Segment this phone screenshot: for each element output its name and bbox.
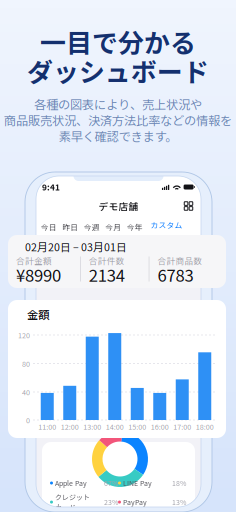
staticText: Apple Pay (55, 478, 87, 488)
button[interactable]: 今月 (102, 217, 124, 237)
staticText: 商品販売状況、決済方法比率などの情報を (4, 111, 232, 129)
staticText: 120 (18, 330, 30, 340)
staticText: 18% (172, 478, 186, 488)
button[interactable]: 昨日 (59, 217, 81, 237)
button[interactable]: 今日 (38, 217, 59, 237)
staticText: デモ店舗 (98, 199, 138, 213)
staticText: 23% (104, 497, 118, 507)
staticText: 67% (104, 478, 118, 488)
staticText: 13:00 (83, 421, 101, 432)
staticText: 9:41 (42, 181, 60, 193)
staticText: 6783 (157, 262, 193, 286)
staticText: 14:00 (106, 421, 124, 432)
staticText: 02月20日 – 03月01日 (25, 239, 127, 254)
button[interactable]: 今年 (124, 217, 145, 237)
staticText: 18:00 (196, 421, 214, 432)
button[interactable]: QRコードを表示 (182, 199, 195, 212)
staticText: 今年 (127, 221, 143, 233)
staticText: 11:00 (38, 421, 56, 432)
staticText: 合計金額 (16, 254, 52, 267)
button[interactable]: カスタム (151, 216, 181, 237)
staticText: クレジットカード (55, 492, 90, 512)
staticText: 昨日 (62, 221, 78, 233)
staticText: 各種の図表により、売上状況や (34, 95, 202, 113)
button[interactable]: 今週 (81, 217, 102, 237)
staticText: 金額 (27, 306, 49, 322)
staticText: 合計件数 (89, 254, 125, 267)
staticText: 今月 (105, 221, 121, 233)
staticText: 2134 (89, 262, 125, 286)
staticText: PayPay (123, 497, 147, 507)
staticText: 13% (172, 497, 186, 507)
staticText: 80 (22, 358, 30, 369)
staticText: 0 (26, 415, 30, 425)
staticText: 17:00 (173, 421, 191, 432)
staticText: 素早く確認できます。 (58, 127, 177, 145)
staticText: 15:00 (128, 421, 146, 432)
staticText: 今日 (41, 221, 57, 233)
staticText: 16:00 (151, 421, 169, 432)
staticText: カスタム (150, 219, 182, 231)
staticText: 一目で分かる (40, 23, 196, 60)
staticText: 今週 (84, 221, 100, 233)
staticText: ダッシュボード (27, 52, 209, 89)
staticText: LINE Pay (123, 478, 152, 488)
staticText: 12:00 (61, 421, 79, 432)
staticText: ¥8990 (16, 262, 61, 286)
staticText: 合計商品数 (157, 254, 202, 267)
staticText: 40 (22, 387, 30, 397)
